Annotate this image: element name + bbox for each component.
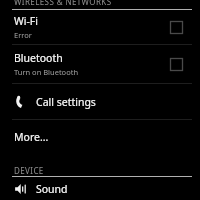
button[interactable]: Wi-Fi bbox=[0, 10, 200, 44]
staticText: Sound bbox=[36, 182, 68, 196]
button[interactable]: Bluetooth bbox=[0, 45, 200, 83]
button[interactable]: Call settings bbox=[0, 84, 200, 119]
staticText: More... bbox=[14, 130, 49, 144]
staticText: Bluetooth bbox=[14, 51, 63, 65]
staticText: Call settings bbox=[36, 95, 96, 109]
button[interactable]: Sound bbox=[0, 177, 200, 200]
button[interactable]: More... bbox=[0, 120, 200, 154]
staticText: Turn on Bluetooth bbox=[14, 67, 79, 77]
staticText: DEVICE bbox=[14, 165, 44, 176]
staticText: Error bbox=[14, 30, 32, 40]
button[interactable]: Toggle Bluetooth bbox=[164, 52, 188, 76]
staticText: Wi-Fi bbox=[14, 14, 39, 28]
staticText: WIRELESS & NETWORKS bbox=[14, 0, 112, 5]
button[interactable]: Toggle Wi-Fi bbox=[164, 15, 188, 39]
